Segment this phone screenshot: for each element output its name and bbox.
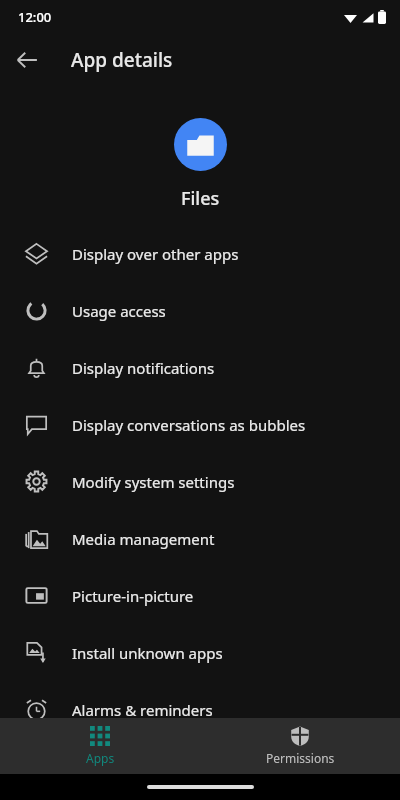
staticText: Modify system settings (72, 472, 235, 492)
button[interactable]: Usage access (0, 282, 400, 339)
staticText: 12:00 (18, 8, 52, 26)
button[interactable]: Display over other apps (0, 225, 400, 282)
button[interactable]: Display conversations as bubbles (0, 396, 400, 453)
staticText: App details (71, 47, 173, 73)
staticText: Display conversations as bubbles (72, 415, 306, 435)
button[interactable]: Permissions (200, 718, 400, 774)
button[interactable]: Apps (0, 718, 200, 774)
staticText: Install unknown apps (72, 643, 223, 663)
button[interactable]: Install unknown apps (0, 624, 400, 681)
staticText: Picture-in-picture (72, 586, 194, 606)
button[interactable]: Display notifications (0, 339, 400, 396)
button[interactable]: Back (6, 39, 48, 81)
staticText: Usage access (72, 301, 166, 321)
staticText: Display over other apps (72, 244, 239, 264)
staticText: Display notifications (72, 358, 215, 378)
button[interactable]: Alarms & reminders (0, 681, 400, 738)
button[interactable]: Modify system settings (0, 453, 400, 510)
staticText: Files (181, 186, 220, 211)
staticText: Alarms & reminders (72, 700, 213, 720)
staticText: Permissions (266, 750, 335, 766)
staticText: Apps (86, 750, 115, 766)
staticText: Media management (72, 529, 215, 549)
button[interactable]: Picture-in-picture (0, 567, 400, 624)
button[interactable]: Media management (0, 510, 400, 567)
